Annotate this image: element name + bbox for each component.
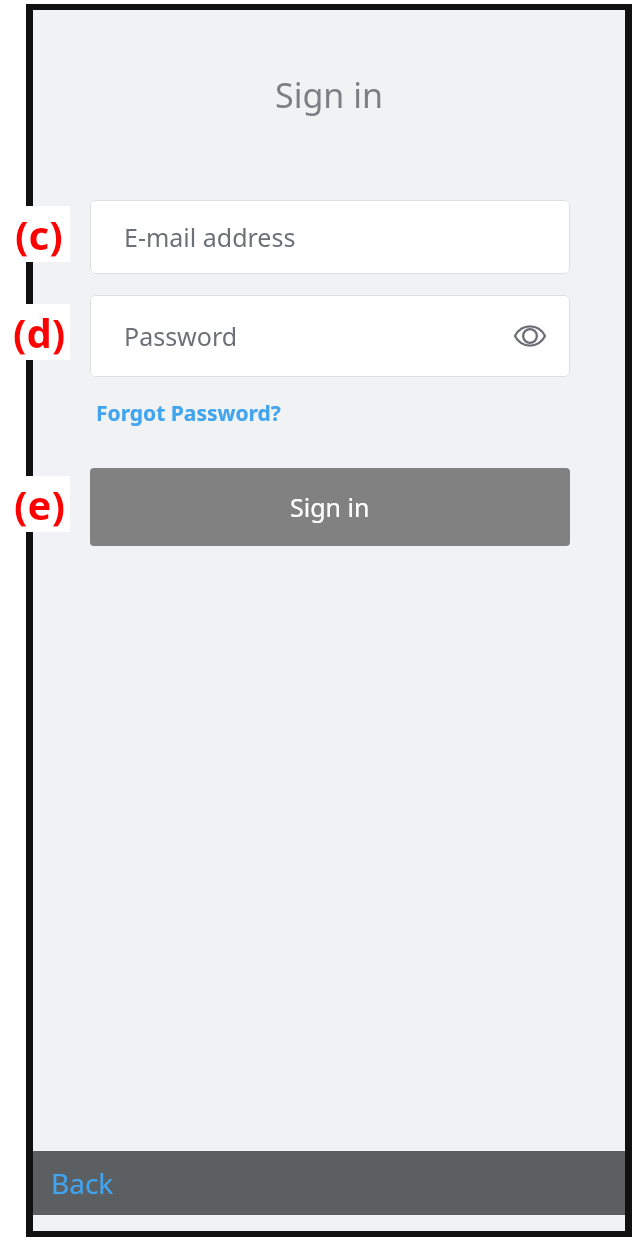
staticText: Sign in [33,72,625,118]
staticText: Back [51,1164,114,1202]
button[interactable]: Sign in [90,468,570,546]
staticText: Password [124,319,238,353]
staticText: Forgot Password? [96,399,281,428]
staticText: (e) [14,477,65,531]
staticText: (d) [13,305,66,359]
staticText: (c) [15,207,63,261]
button[interactable]: E-mail address [90,200,570,274]
button[interactable]: Show password [508,314,552,358]
button[interactable]: Back [33,1151,625,1215]
button[interactable]: Password [90,295,570,377]
staticText: E-mail address [124,220,296,254]
staticText: Sign in [290,490,370,524]
button[interactable]: Forgot Password? [93,395,284,432]
